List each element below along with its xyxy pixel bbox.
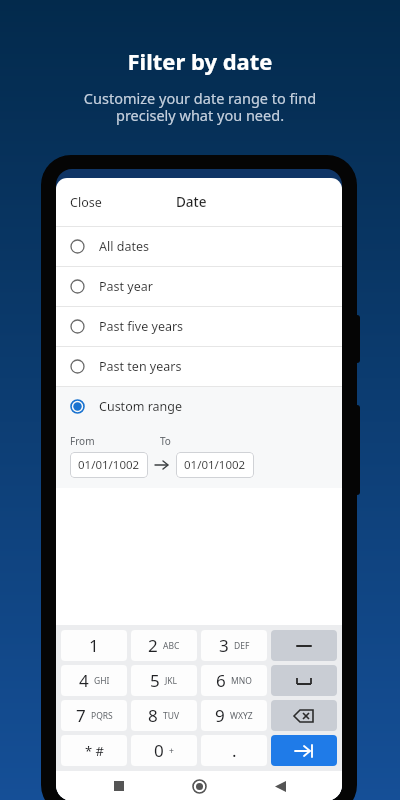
button[interactable]: 5: [131, 665, 197, 696]
button[interactable]: Past year: [56, 267, 342, 306]
button[interactable]: * #: [61, 735, 127, 766]
staticText: Past ten years: [99, 358, 182, 375]
button[interactable]: .: [201, 735, 267, 766]
button[interactable]: 3: [201, 630, 267, 661]
staticText: ABC: [163, 640, 180, 652]
staticText: MNO: [231, 675, 252, 687]
button[interactable]: Past five years: [56, 307, 342, 346]
button[interactable]: Close: [64, 188, 108, 217]
button[interactable]: enter: [271, 735, 337, 766]
staticText: WXYZ: [230, 710, 253, 722]
staticText: +: [169, 745, 174, 757]
button[interactable]: 8: [131, 700, 197, 731]
staticText: 1: [89, 634, 99, 657]
staticText: Filter by date: [18, 46, 382, 76]
staticText: Past year: [99, 278, 153, 295]
button[interactable]: 01/01/1002: [176, 452, 254, 478]
staticText: 6: [216, 669, 226, 692]
staticText: 9: [215, 704, 225, 727]
staticText: Customize your date range to find precis…: [18, 88, 382, 125]
button[interactable]: Back: [262, 771, 298, 800]
button[interactable]: All dates: [56, 227, 342, 266]
button[interactable]: 2: [131, 630, 197, 661]
staticText: Past five years: [99, 318, 184, 335]
button[interactable]: 6: [201, 665, 267, 696]
button[interactable]: Recent apps: [101, 771, 137, 800]
button[interactable]: 9: [201, 700, 267, 731]
button[interactable]: Custom range: [56, 387, 342, 426]
staticText: JKL: [165, 675, 178, 687]
staticText: TUV: [163, 710, 180, 722]
staticText: .: [232, 739, 237, 762]
button[interactable]: dash: [271, 630, 337, 661]
staticText: 4: [79, 669, 89, 692]
staticText: * #: [85, 742, 104, 760]
button[interactable]: del: [271, 700, 337, 731]
staticText: 8: [148, 704, 158, 727]
staticText: 0: [154, 739, 164, 762]
button[interactable]: space: [271, 665, 337, 696]
staticText: GHI: [94, 675, 110, 687]
staticText: 3: [219, 634, 229, 657]
staticText: 01/01/1002: [184, 457, 246, 473]
staticText: 01/01/1002: [78, 457, 140, 473]
staticText: 7: [76, 704, 86, 727]
staticText: Close: [70, 194, 102, 211]
button[interactable]: 4: [61, 665, 127, 696]
staticText: 2: [148, 634, 158, 657]
staticText: 5: [150, 669, 160, 692]
staticText: PQRS: [91, 710, 113, 722]
staticText: Custom range: [99, 398, 183, 415]
button[interactable]: Home: [181, 771, 217, 800]
button[interactable]: Past ten years: [56, 347, 342, 386]
staticText: From: [70, 434, 95, 448]
button[interactable]: 0: [131, 735, 197, 766]
staticText: To: [160, 434, 171, 448]
staticText: All dates: [99, 238, 149, 255]
button[interactable]: 7: [61, 700, 127, 731]
staticText: Date: [176, 193, 207, 211]
button[interactable]: 1: [61, 630, 127, 661]
button[interactable]: 01/01/1002: [70, 452, 148, 478]
staticText: DEF: [234, 640, 250, 652]
